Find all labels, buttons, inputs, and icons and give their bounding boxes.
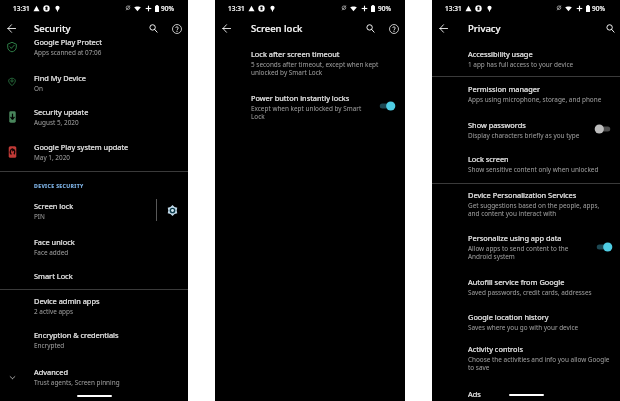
button[interactable]: Screen lock [0,192,188,226]
staticText: 13:31 [445,4,462,13]
button[interactable]: Ads [432,381,620,401]
staticText: PIN [34,212,45,221]
staticText: Find My Device [34,73,86,83]
button[interactable]: Google Play Protect [0,40,188,62]
staticText: Smart Lock [34,271,73,281]
staticText: Google Play system update [34,142,129,152]
staticText: Display characters briefly as you type [468,131,580,140]
staticText: Show passwords [468,120,526,130]
staticText: August 5, 2020 [34,118,79,127]
staticText: Lock after screen timeout [251,49,340,59]
button[interactable]: Activity controls [432,339,620,380]
staticText: 13:31 [13,4,30,13]
button[interactable]: Accessibility usage [432,42,620,74]
button[interactable]: Search [146,21,161,36]
staticText: 2 active apps [34,307,73,316]
button[interactable]: Screen lock settings [157,199,188,221]
button[interactable]: Help [169,21,184,36]
staticText: Saved passwords, credit cards, addresses [468,288,592,297]
staticText: Device Personalization Services [468,190,577,200]
button[interactable]: Back [219,21,234,36]
staticText: Get suggestions based on the people, app… [468,201,612,218]
staticText: Personalize using app data [468,233,562,243]
button[interactable]: Toggle on [376,99,397,113]
button[interactable]: Device Personalization Services [432,185,620,225]
button[interactable]: Search [603,21,618,36]
staticText: Apps using microphone, storage, and phon… [468,95,602,104]
staticText: Screen lock [34,201,74,211]
staticText: Saves where you go with your device [468,323,579,332]
button[interactable]: Find My Device [0,62,188,97]
staticText: Except when kept unlocked by Smart Lock [251,104,368,121]
button[interactable]: Lock after screen timeout [215,40,405,82]
button[interactable]: Power button instantly locks [215,85,405,126]
staticText: Face unlock [34,237,75,247]
button[interactable]: Google location history [432,304,620,338]
staticText: Screen lock [251,22,303,35]
staticText: Face added [34,248,69,257]
staticText: Autofill service from Google [468,277,565,287]
button[interactable]: Help [386,21,401,36]
staticText: 1 app has full access to your device [468,60,574,69]
staticText: Allow apps to send content to the Androi… [468,244,580,261]
button[interactable]: Lock screen [432,146,620,182]
staticText: Choose the activities and info you allow… [468,355,612,372]
button[interactable]: Device admin apps [0,290,188,326]
button[interactable]: Toggle on [593,240,614,254]
staticText: Security update [34,107,89,117]
staticText: DEVICE SECURITY [34,182,84,189]
staticText: Activity controls [468,344,523,354]
staticText: Advanced [34,367,68,377]
staticText: On [34,84,43,93]
staticText: Device admin apps [34,296,100,306]
button[interactable]: Advanced [0,359,188,391]
staticText: Accessibility usage [468,49,533,59]
button[interactable]: Face unlock [0,226,188,261]
button[interactable]: Back [4,21,19,36]
staticText: Google location history [468,312,549,322]
staticText: May 1, 2020 [34,153,70,162]
button[interactable]: Encryption & credentials [0,325,188,359]
staticText: 5 seconds after timeout, except when kep… [251,60,383,77]
staticText: 13:31 [228,4,245,13]
button[interactable]: Back [436,21,451,36]
button[interactable]: Show passwords [432,111,620,145]
staticText: Privacy [468,22,501,35]
staticText: Permission manager [468,84,540,94]
staticText: Trust agents, Screen pinning [34,378,120,387]
staticText: Encrypted [34,341,65,350]
button[interactable]: Permission manager [432,77,620,110]
button[interactable]: Security update [0,97,188,132]
button[interactable]: Autofill service from Google [432,269,620,303]
staticText: 90% [592,4,605,13]
staticText: 90% [161,4,174,13]
button[interactable]: Personalize using app data [432,226,620,268]
staticText: Lock screen [468,154,509,164]
staticText: Apps scanned at 07:06 [34,48,102,57]
staticText: Ads [468,389,481,399]
button[interactable]: Google Play system update [0,132,188,171]
staticText: Google Play Protect [34,40,102,47]
button[interactable]: Search [363,21,378,36]
button[interactable]: Smart Lock [0,261,188,289]
staticText: Show sensitive content only when unlocke… [468,165,599,174]
staticText: Encryption & credentials [34,330,119,340]
staticText: Security [34,22,71,35]
button[interactable]: Toggle off [593,122,614,136]
staticText: 90% [378,4,391,13]
staticText: Power button instantly locks [251,93,350,103]
